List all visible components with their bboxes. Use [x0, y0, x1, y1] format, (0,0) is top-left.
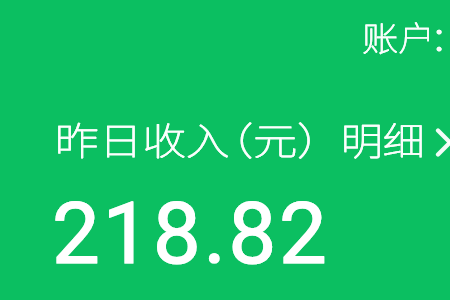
- staticText: 明细: [341, 111, 450, 166]
- staticText: 昨日收入: [55, 111, 450, 166]
- staticText: ：: [430, 12, 450, 61]
- staticText: （元）: [209, 111, 450, 166]
- staticText: 账户: [362, 12, 450, 61]
- staticText: 昨日收入: [55, 111, 450, 166]
- staticText: 218.82: [52, 184, 330, 284]
- button[interactable]: 明细: [337, 112, 450, 162]
- staticText: （元）: [209, 111, 450, 166]
- staticText: 明细: [341, 111, 450, 166]
- staticText: 账户: [362, 12, 450, 61]
- staticText: 218.82: [52, 184, 330, 284]
- button[interactable]: 切换账户: [352, 14, 450, 60]
- staticText: ：: [430, 12, 450, 61]
